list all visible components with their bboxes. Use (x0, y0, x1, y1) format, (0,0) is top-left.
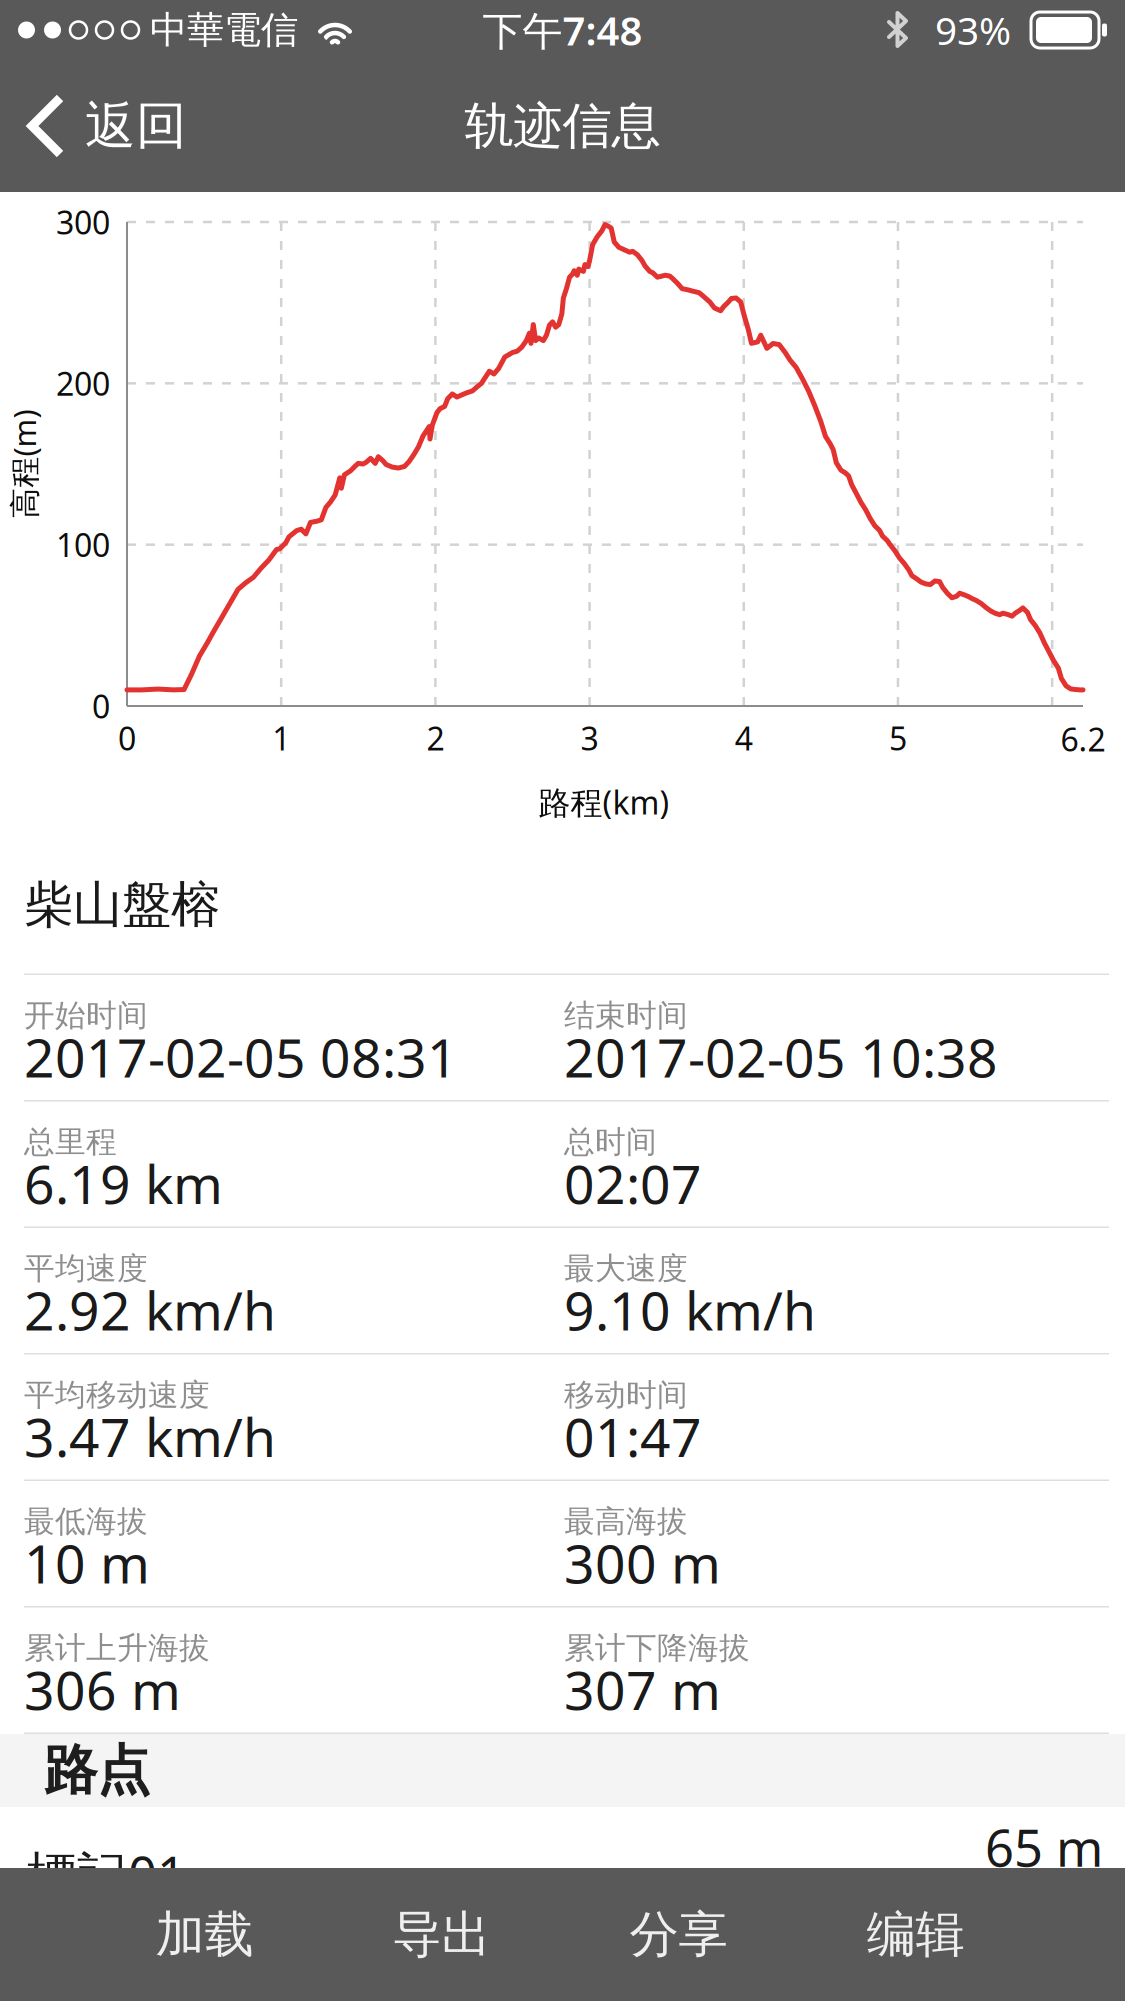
staticText: 標記01 (26, 1840, 186, 1908)
staticText: 轨迹信息 (464, 96, 660, 156)
staticText: 累计下降海拔 (564, 1629, 750, 1667)
staticText: 2 (426, 717, 444, 759)
staticText: 中華電信 (150, 7, 298, 53)
staticText: 导出 (392, 1904, 490, 1965)
staticText: 2.92 km/h (24, 1274, 276, 1345)
staticText: 0 (92, 685, 110, 727)
staticText: 10 m (24, 1527, 150, 1598)
button[interactable]: 导出 (323, 1868, 560, 2001)
staticText: 下午7:48 (482, 3, 642, 56)
staticText: 编辑 (866, 1904, 964, 1965)
staticText: 总里程 (24, 1123, 117, 1161)
staticText: 6.2 (1060, 718, 1105, 760)
staticText: 3 (581, 717, 599, 759)
staticText: 2017-02-05 10:38 (564, 1021, 998, 1092)
staticText: 100 (56, 523, 110, 566)
staticText: 加载 (155, 1904, 253, 1965)
staticText: 返回 (85, 95, 187, 157)
staticText: 5 (889, 717, 907, 759)
staticText: 01:47 (564, 1401, 702, 1472)
staticText: 0 (118, 717, 136, 759)
staticText: 306 m (24, 1654, 181, 1725)
staticText: 6.19 km (24, 1148, 223, 1219)
staticText: 最低海拔 (24, 1503, 148, 1540)
staticText: 柴山盤榕 (24, 874, 220, 935)
staticText: 307 m (564, 1654, 721, 1725)
staticText: 开始时间 (24, 997, 148, 1034)
staticText: 93% (935, 4, 1011, 56)
button[interactable]: 编辑 (797, 1868, 1034, 2001)
staticText: 分享 (629, 1904, 727, 1965)
staticText: 2017-02-05 08:31 (24, 1021, 458, 1092)
staticText: 200 (56, 362, 110, 405)
staticText: 平均速度 (24, 1250, 148, 1287)
staticText: 最大速度 (564, 1250, 688, 1287)
staticText: 300 m (564, 1527, 721, 1598)
staticText: 累计上升海拔 (24, 1629, 210, 1667)
staticText: 平均移动速度 (24, 1376, 210, 1414)
button[interactable]: 加载 (86, 1868, 323, 2001)
staticText: 总时间 (564, 1123, 657, 1161)
staticText: 300 (56, 201, 110, 243)
staticText: 65 m (985, 1813, 1103, 1881)
staticText: 4 (735, 717, 753, 759)
staticText: 3.47 km/h (24, 1401, 276, 1472)
staticText: 移动时间 (564, 1376, 688, 1414)
staticText: 路程(km) (538, 781, 669, 823)
staticText: 9.10 km/h (564, 1274, 816, 1345)
staticText: 02:07 (564, 1148, 702, 1219)
staticText: 高程(m) (0, 444, 78, 484)
staticText: 最高海拔 (564, 1503, 688, 1540)
staticText: 1 (272, 717, 290, 759)
button[interactable]: 返回 (0, 60, 207, 192)
button[interactable]: 分享 (560, 1868, 797, 2001)
staticText: 路点 (44, 1738, 150, 1803)
staticText: 结束时间 (564, 997, 688, 1034)
button[interactable]: 標記01 (0, 1807, 1125, 1868)
